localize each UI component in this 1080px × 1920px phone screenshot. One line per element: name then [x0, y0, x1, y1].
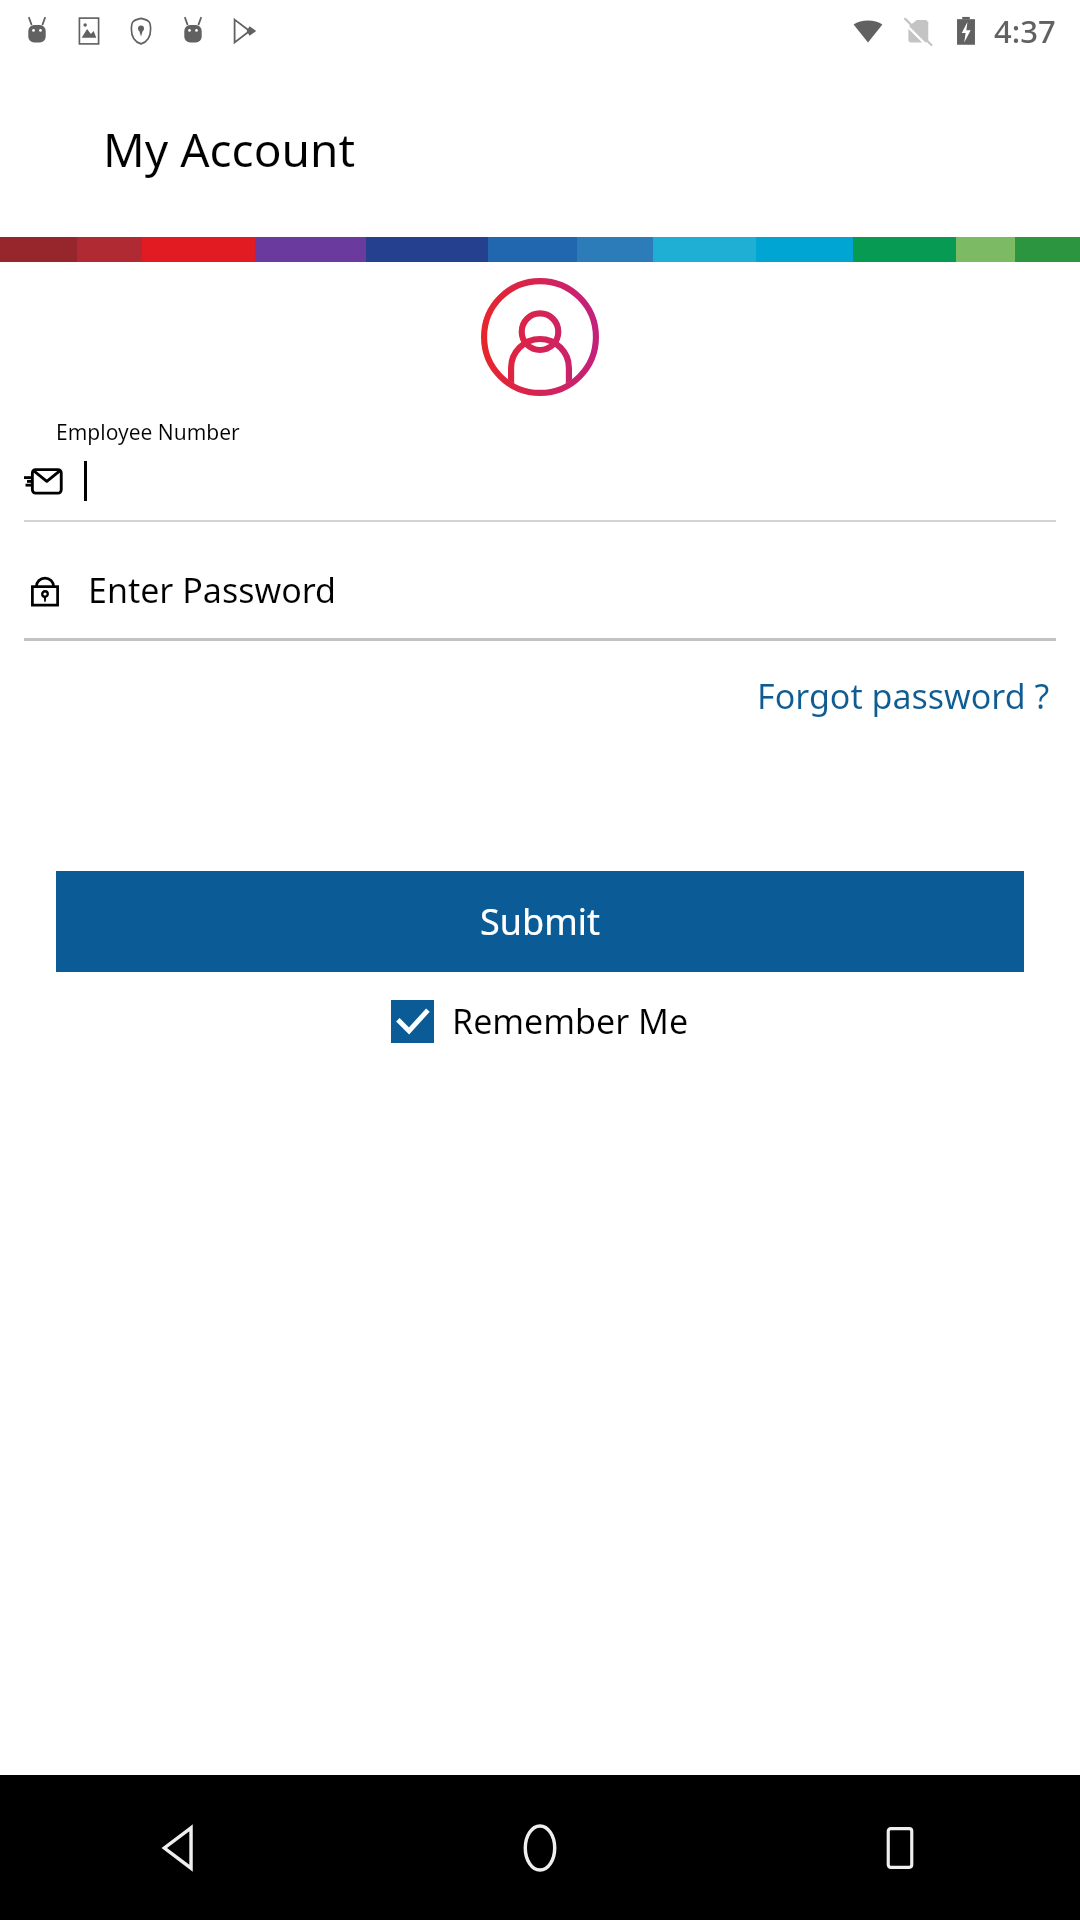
staticText: Employee Number	[56, 418, 240, 447]
button[interactable]: Recent apps	[720, 1775, 1080, 1920]
button[interactable]: Back	[0, 1775, 360, 1920]
button[interactable]: Remember Me	[385, 994, 695, 1048]
staticText: My Account	[103, 118, 355, 181]
button[interactable]: Home	[360, 1775, 720, 1920]
staticText: 4:37	[994, 10, 1056, 52]
button[interactable]	[24, 455, 1056, 507]
button[interactable]: Enter Password	[24, 564, 1056, 616]
button[interactable]: Forgot password ?	[753, 667, 1054, 725]
staticText: Enter Password	[88, 567, 337, 613]
staticText: Forgot password ?	[757, 673, 1050, 719]
staticText: Remember Me	[452, 998, 689, 1044]
staticText: Submit	[480, 897, 601, 946]
button[interactable]: Submit	[56, 871, 1024, 972]
